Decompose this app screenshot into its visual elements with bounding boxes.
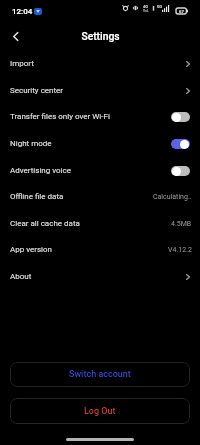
- staticText: 4G: [143, 4, 149, 9]
- staticText: Offline file data: [10, 192, 64, 201]
- staticText: App version: [10, 245, 53, 254]
- staticText: 12:04: [12, 7, 33, 16]
- staticText: Calculating..: [153, 193, 192, 201]
- button[interactable]: App version: [0, 236, 200, 263]
- staticText: Security center: [10, 86, 64, 95]
- staticText: Log Out: [84, 406, 116, 417]
- button[interactable]: Import: [0, 50, 200, 77]
- button[interactable]: Transfer files only over Wi-Fi: [0, 103, 200, 130]
- staticText: Settings: [81, 30, 120, 42]
- button[interactable]: Back: [4, 25, 27, 48]
- staticText: Advertising voice: [10, 166, 71, 175]
- staticText: Switch account: [69, 369, 131, 380]
- staticText: Transfer files only over Wi-Fi: [10, 112, 110, 121]
- staticText: VoL: [143, 9, 149, 13]
- button[interactable]: Offline file data: [0, 183, 200, 210]
- staticText: About: [10, 272, 32, 281]
- staticText: 5G: [157, 4, 163, 9]
- staticText: Night mode: [10, 139, 52, 148]
- button[interactable]: About: [0, 263, 200, 290]
- button[interactable]: Clear all cache data: [0, 210, 200, 237]
- button[interactable]: Security center: [0, 77, 200, 104]
- button[interactable]: Switch account: [10, 362, 190, 387]
- button[interactable]: Advertising voice: [0, 157, 200, 184]
- staticText: 4.5MB: [171, 220, 192, 228]
- staticText: V4.12.2: [168, 246, 192, 254]
- staticText: 67: [179, 9, 184, 14]
- staticText: Clear all cache data: [10, 219, 80, 228]
- button[interactable]: Log Out: [10, 398, 190, 424]
- staticText: Import: [10, 59, 34, 68]
- button[interactable]: Night mode: [0, 130, 200, 157]
